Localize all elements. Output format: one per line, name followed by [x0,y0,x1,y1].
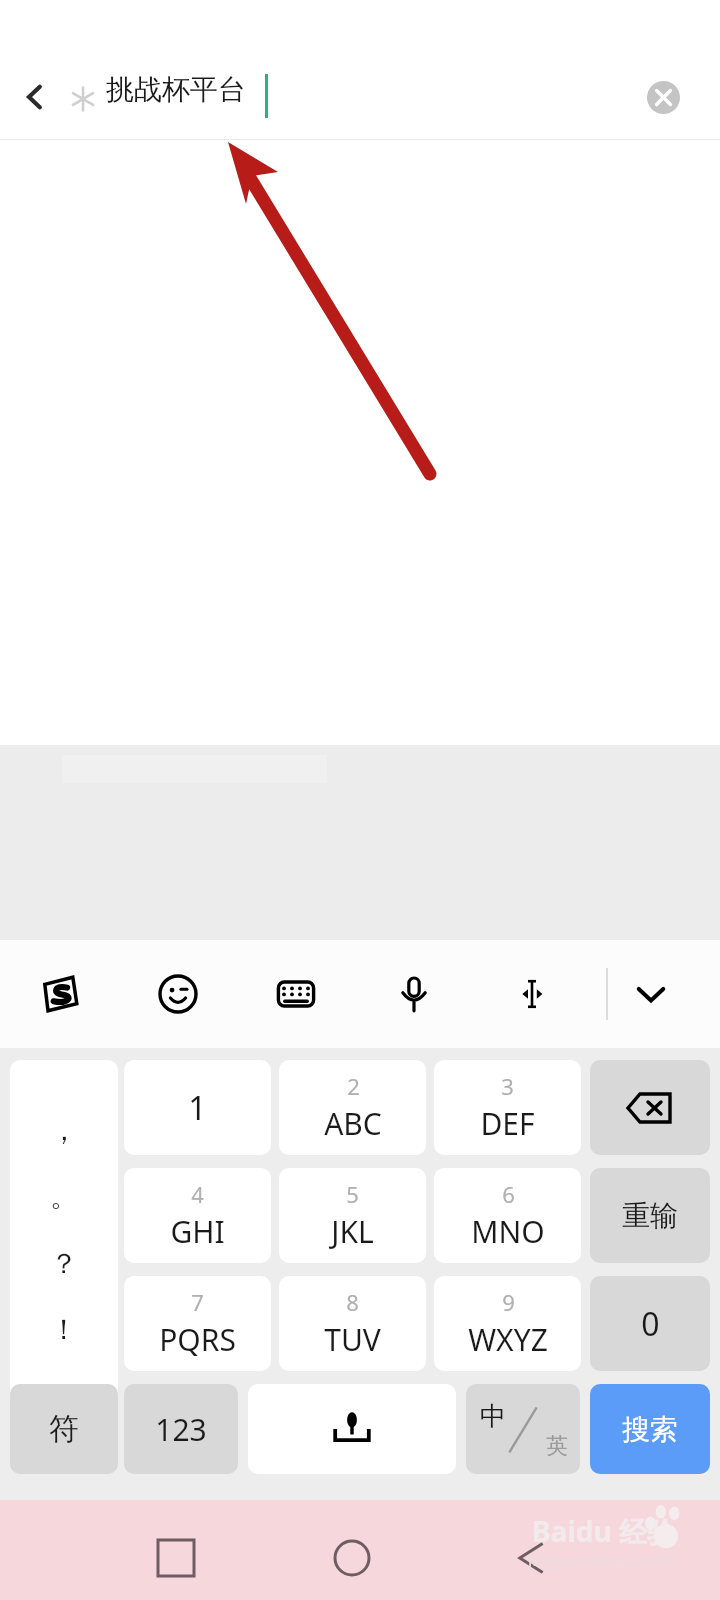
staticText: 6 [502,1179,515,1209]
button[interactable]: Emoji [150,966,206,1022]
button[interactable]: Back [8,70,62,124]
staticText: 挑战杯平台 [106,72,246,107]
staticText: 搜索 [622,1412,678,1447]
button[interactable]: Voice input [386,966,442,1022]
staticText: ！ [50,1312,78,1347]
staticText: PQRS [159,1319,236,1360]
staticText: 7 [191,1287,204,1317]
button[interactable]: 2 [279,1060,426,1155]
button[interactable]: Home [316,1522,388,1594]
staticText: 5 [346,1179,359,1209]
staticText: ABC [324,1103,382,1144]
button[interactable]: Move cursor [504,966,560,1022]
button[interactable]: Hide keyboard [623,966,679,1022]
button[interactable]: Keyboard layout [268,966,324,1022]
button[interactable]: 9 [434,1276,581,1371]
staticText: jingyan.baidu.com [528,1548,676,1571]
staticText: 中 [480,1400,506,1433]
button[interactable]: Space [248,1384,456,1474]
staticText: 。 [50,1179,78,1214]
staticText: JKL [331,1211,374,1252]
staticText: GHI [170,1211,225,1252]
button[interactable]: 1 [124,1060,271,1155]
staticText: 4 [191,1179,204,1209]
button[interactable]: 5 [279,1168,426,1263]
staticText: Baidu 经验 [532,1512,675,1550]
button[interactable]: 7 [124,1276,271,1371]
staticText: 9 [502,1287,515,1317]
button[interactable]: 中 [466,1384,580,1474]
staticText: DEF [480,1103,535,1144]
button[interactable]: 4 [124,1168,271,1263]
staticText: 3 [501,1071,514,1101]
staticText: 英 [546,1432,568,1460]
button[interactable]: 8 [279,1276,426,1371]
button[interactable]: Recents [140,1522,212,1594]
button[interactable]: 搜索 [590,1384,710,1474]
staticText: 1 [188,1086,207,1130]
staticText: 2 [347,1071,360,1101]
staticText: ？ [50,1246,78,1281]
staticText: WXYZ [468,1319,548,1360]
button[interactable]: Back [496,1522,568,1594]
button[interactable]: 123 [124,1384,238,1474]
button[interactable]: 6 [434,1168,581,1263]
button[interactable]: ， [10,1060,118,1400]
staticText: 8 [346,1287,359,1317]
staticText: ， [50,1113,78,1148]
button[interactable]: 3 [434,1060,581,1155]
staticText: 重输 [622,1198,678,1233]
staticText: TUV [324,1319,381,1360]
button[interactable]: Clear [639,73,687,121]
button[interactable]: Backspace [590,1060,710,1155]
button[interactable]: Sogou input [32,966,88,1022]
staticText: 123 [155,1409,207,1450]
button[interactable]: 符 [10,1384,118,1474]
staticText: MNO [471,1211,545,1252]
button[interactable]: 重输 [590,1168,710,1263]
staticText: 符 [49,1410,79,1448]
staticText: 0 [641,1302,660,1346]
button[interactable]: 0 [590,1276,710,1371]
